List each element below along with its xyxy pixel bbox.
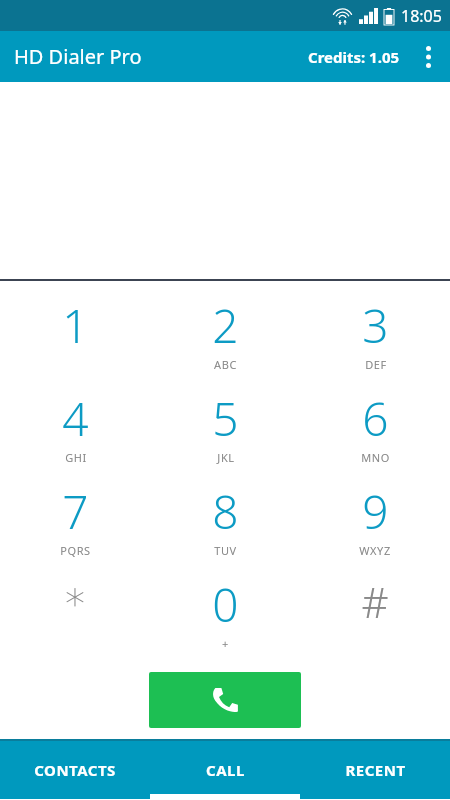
button[interactable]: Call xyxy=(149,672,301,728)
staticText: 2 xyxy=(212,294,239,357)
staticText: HD Dialer Pro xyxy=(14,43,142,70)
button[interactable]: 3 xyxy=(300,290,450,383)
staticText: 0 xyxy=(212,573,239,636)
staticText: CALL xyxy=(206,760,245,780)
staticText: 1 xyxy=(62,294,89,357)
button[interactable]: 8 xyxy=(150,476,300,569)
button[interactable]: 9 xyxy=(300,476,450,569)
staticText: 5 xyxy=(212,387,239,450)
staticText: Credits: 1.05 xyxy=(308,47,400,67)
staticText: 7 xyxy=(62,480,89,543)
button[interactable]: More options xyxy=(406,31,450,82)
button[interactable]: CALL xyxy=(150,741,300,799)
staticText: TUV xyxy=(214,543,237,558)
staticText: 4 xyxy=(62,387,89,450)
staticText: + xyxy=(222,636,229,651)
button[interactable]: 0 xyxy=(150,569,300,662)
staticText: RECENT xyxy=(345,760,406,780)
staticText: 3 xyxy=(362,294,389,357)
staticText: JKL xyxy=(217,450,235,465)
staticText: MNO xyxy=(361,450,390,465)
button[interactable]: 2 xyxy=(150,290,300,383)
button[interactable]: ∗ xyxy=(0,569,150,662)
staticText: ABC xyxy=(214,357,237,372)
staticText: 18:05 xyxy=(401,5,442,27)
button[interactable]: 1 xyxy=(0,290,150,383)
staticText: # xyxy=(361,573,389,630)
button[interactable]: CONTACTS xyxy=(0,741,150,799)
staticText: 9 xyxy=(362,480,389,543)
staticText: PQRS xyxy=(60,543,91,558)
staticText: CONTACTS xyxy=(34,760,116,780)
button[interactable]: # xyxy=(300,569,450,662)
staticText: GHI xyxy=(65,450,87,465)
button[interactable]: 7 xyxy=(0,476,150,569)
staticText: WXYZ xyxy=(359,543,391,558)
button[interactable]: RECENT xyxy=(300,741,450,799)
staticText: DEF xyxy=(365,357,387,372)
staticText: 8 xyxy=(212,480,239,543)
staticText: ∗ xyxy=(62,573,88,620)
button[interactable]: Credits: 1.05 xyxy=(302,39,406,75)
button[interactable]: 6 xyxy=(300,383,450,476)
button[interactable]: 4 xyxy=(0,383,150,476)
button[interactable]: 5 xyxy=(150,383,300,476)
staticText: 6 xyxy=(362,387,389,450)
